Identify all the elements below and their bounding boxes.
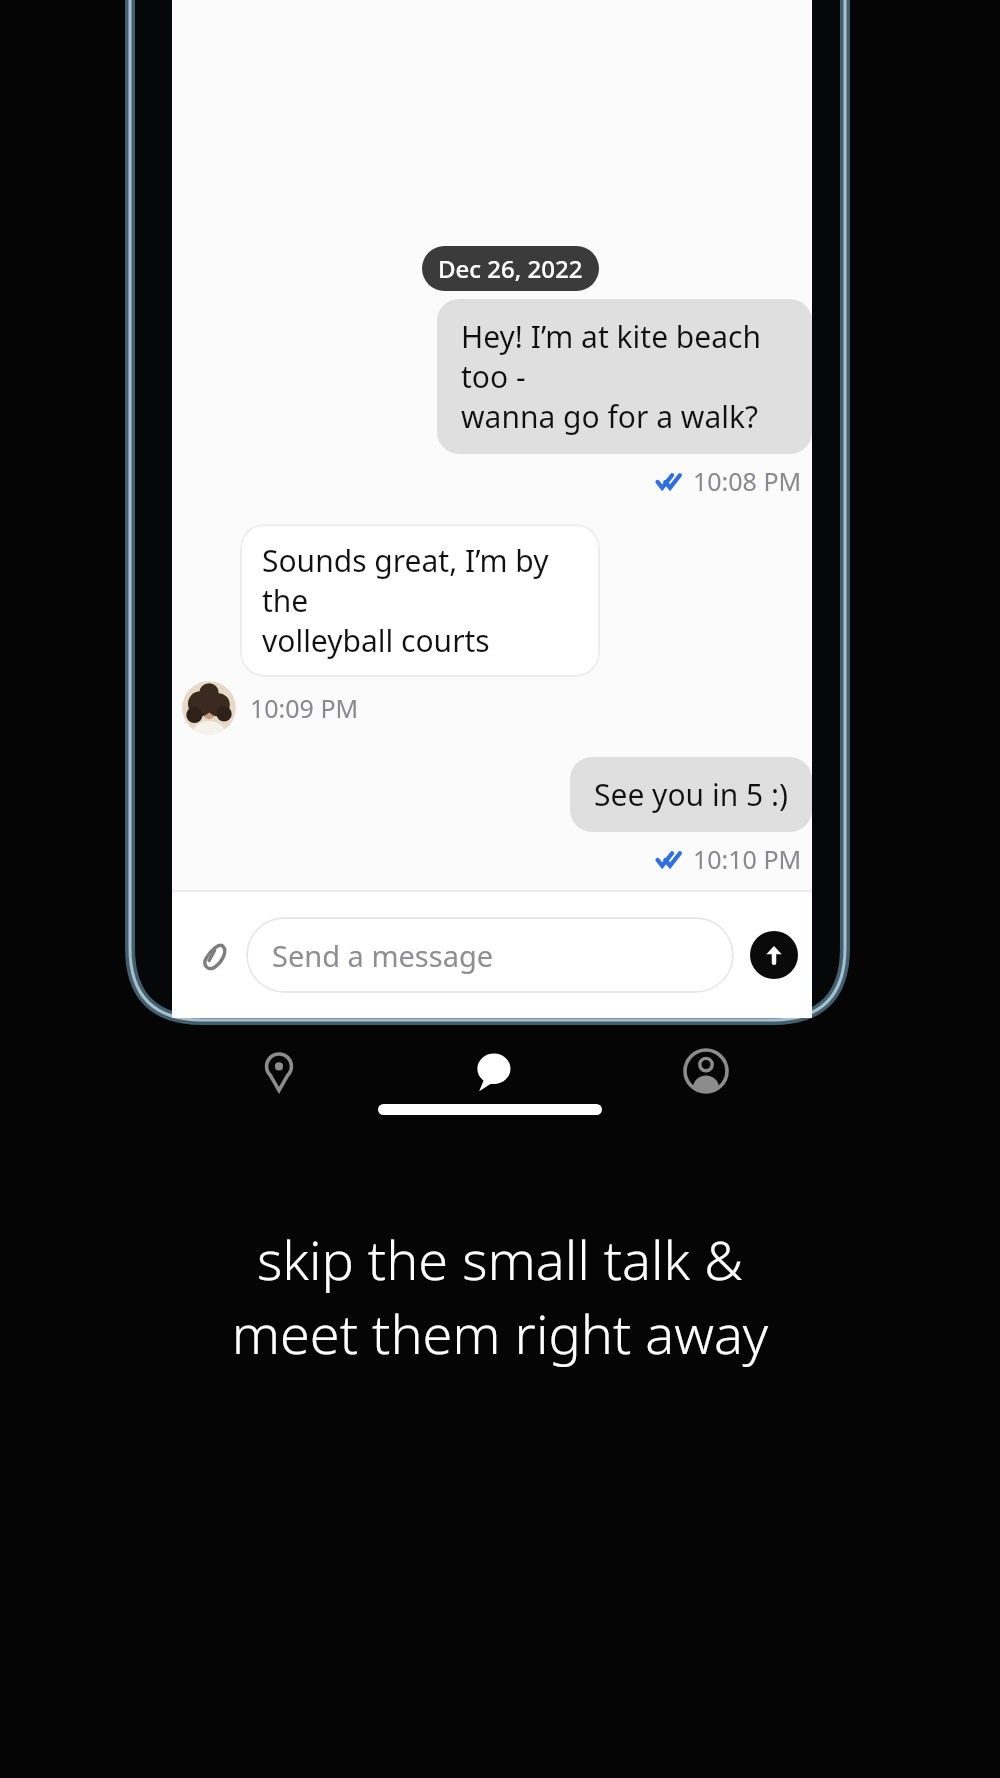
staticText: Dec 26, 2022 <box>438 252 583 285</box>
staticText: See you in 5 :) <box>594 774 788 815</box>
staticText: Sounds great, I’m by the volleyball cour… <box>262 540 578 661</box>
button[interactable]: Profile <box>599 1023 812 1119</box>
staticText: Hey! I’m at kite beach too - wanna go fo… <box>461 316 788 437</box>
button[interactable]: Map <box>172 1023 386 1119</box>
staticText: 10:10 PM <box>693 842 802 876</box>
staticText: meet them right away <box>0 1296 1000 1370</box>
staticText: 10:08 PM <box>693 464 802 498</box>
button[interactable]: Chats <box>386 1023 599 1119</box>
button[interactable]: Send <box>750 931 798 979</box>
button[interactable]: Sounds great, I’m by the volleyball cour… <box>240 524 600 677</box>
button[interactable]: Hey! I’m at kite beach too - wanna go fo… <box>437 299 812 454</box>
button[interactable]: Attach file <box>186 925 246 985</box>
staticText: Send a message <box>272 936 494 975</box>
button[interactable]: Send a message <box>246 917 734 993</box>
staticText: skip the small talk & <box>0 1222 1000 1296</box>
staticText: 10:09 PM <box>250 691 359 725</box>
button[interactable]: See you in 5 :) <box>570 757 812 832</box>
